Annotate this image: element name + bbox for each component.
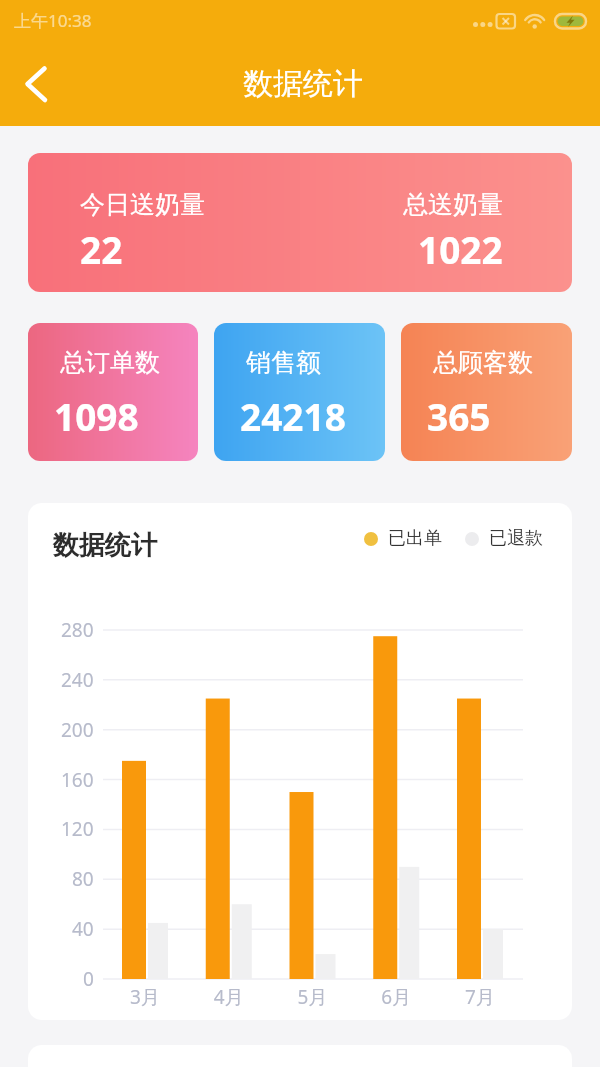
staticText: 已退款 — [489, 527, 543, 550]
button[interactable] — [14, 59, 62, 107]
staticText: 销售额 — [246, 347, 321, 378]
staticText: 已出单 — [388, 527, 442, 550]
staticText: 365 — [427, 391, 491, 441]
staticText: 总订单数 — [60, 347, 160, 378]
staticText: 24218 — [240, 391, 346, 441]
staticText: 1098 — [54, 391, 139, 441]
staticText: 数据统计 — [243, 65, 363, 103]
staticText: 1022 — [418, 224, 503, 274]
staticText: 22 — [80, 224, 123, 274]
button[interactable]: 销售额 — [214, 323, 385, 461]
staticText: 数据统计 — [53, 529, 157, 562]
button[interactable]: 总顾客数 — [401, 323, 572, 461]
staticText: 今日送奶量 — [80, 189, 205, 220]
staticText: 总送奶量 — [403, 189, 503, 220]
button[interactable]: 总订单数 — [28, 323, 198, 461]
button[interactable]: 今日送奶量 — [28, 153, 572, 292]
staticText: 总顾客数 — [433, 347, 533, 378]
staticText: 上午10:38 — [14, 9, 92, 32]
